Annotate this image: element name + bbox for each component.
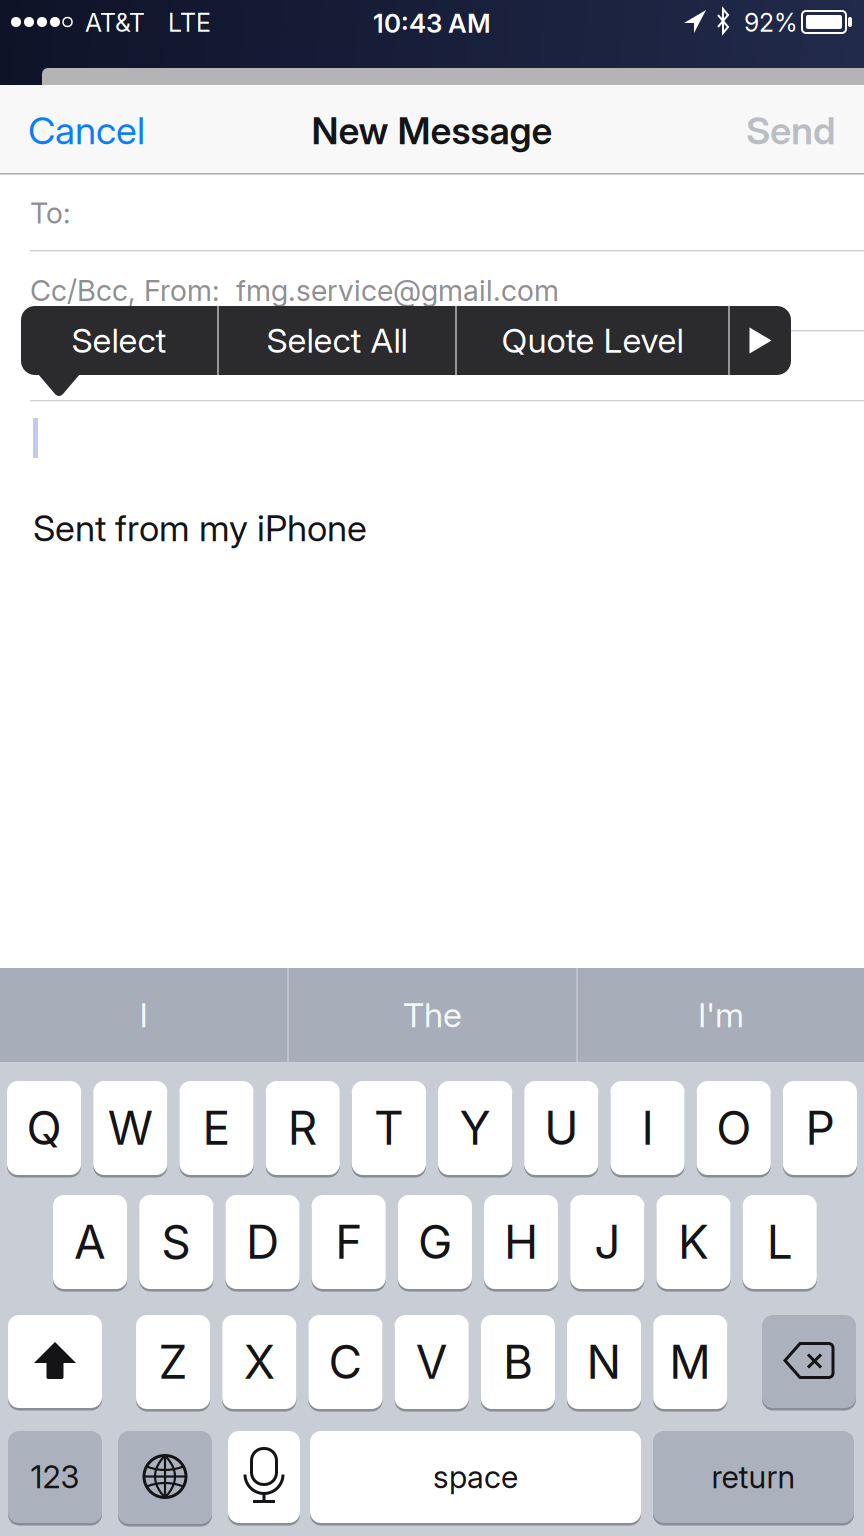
button[interactable]: R [266,1081,340,1177]
staticText: F [335,1215,362,1269]
button[interactable]: space [310,1431,641,1525]
button[interactable]: P [783,1081,857,1177]
staticText: return [711,1459,795,1495]
button[interactable]: T [352,1081,426,1177]
staticText: A [74,1215,106,1269]
staticText: Send [746,108,836,153]
button[interactable]: O [697,1081,771,1177]
button[interactable]: N [567,1315,641,1411]
staticText: D [246,1215,279,1269]
staticText: X [244,1335,275,1389]
staticText: I [139,995,147,1035]
button[interactable]: return [653,1431,854,1525]
button[interactable]: U [524,1081,598,1177]
button[interactable]: Send [746,108,836,153]
button[interactable]: F [312,1195,386,1291]
button[interactable]: Dictate [228,1431,300,1525]
staticText: J [594,1215,620,1269]
button[interactable]: B [481,1315,555,1411]
staticText: H [504,1215,538,1269]
staticText: Sent from my iPhone [33,507,367,549]
button[interactable]: L [743,1195,817,1291]
button[interactable]: Select All [219,306,455,375]
button[interactable]: C [308,1315,383,1411]
button[interactable]: V [395,1315,469,1411]
staticText: C [328,1335,362,1389]
staticText: space [433,1459,518,1495]
button[interactable]: I [0,968,287,1062]
button[interactable]: S [139,1195,213,1291]
button[interactable]: Quote Level [457,306,728,375]
button[interactable]: I'm [578,968,864,1062]
button[interactable]: Y [438,1081,512,1177]
button[interactable]: Z [136,1315,210,1411]
staticText: I'm [698,995,744,1035]
button[interactable]: To: [30,176,864,250]
staticText: LTE [168,8,211,37]
staticText: M [669,1335,711,1389]
staticText: The [403,995,462,1035]
button[interactable]: Next keyboard [118,1431,212,1526]
button[interactable]: 123 [8,1431,102,1525]
button[interactable]: K [656,1195,731,1291]
staticText: New Message [311,109,552,153]
staticText: Select [71,320,166,360]
button[interactable]: G [398,1195,472,1291]
staticText: 92% [744,8,798,37]
staticText: Select All [266,320,407,360]
staticText: Q [27,1101,62,1155]
staticText: E [202,1101,230,1155]
button[interactable]: W [93,1081,167,1177]
button[interactable]: Q [7,1081,81,1177]
staticText: I [641,1101,653,1155]
button[interactable]: More menu items [730,306,791,375]
button[interactable]: Shift [8,1315,102,1410]
staticText: B [503,1335,533,1389]
staticText: W [108,1101,153,1155]
staticText: R [288,1101,318,1155]
button[interactable]: I [610,1081,685,1177]
button[interactable]: Select [21,306,217,375]
button[interactable]: X [222,1315,296,1411]
button[interactable]: Cancel [28,108,145,153]
staticText: Cancel [28,108,145,153]
staticText: K [678,1215,709,1269]
staticText: 123 [30,1459,79,1495]
staticText: V [416,1335,448,1389]
staticText: Cc/Bcc, From: fmg.service@gmail.com [30,273,559,308]
staticText: U [544,1101,578,1155]
staticText: N [587,1335,622,1389]
button[interactable]: M [653,1315,727,1411]
staticText: Z [159,1335,188,1389]
button[interactable]: J [570,1195,644,1291]
staticText: Quote Level [501,320,683,360]
staticText: G [418,1215,452,1269]
button[interactable]: H [484,1195,558,1291]
staticText: P [805,1101,834,1155]
staticText: T [374,1101,404,1155]
staticText: L [767,1215,793,1269]
button[interactable]: Cc/Bcc, From: fmg.service@gmail.com [30,251,864,330]
button[interactable]: A [53,1195,127,1291]
staticText: To: [30,196,71,230]
staticText: AT&T [85,8,145,37]
button[interactable]: Delete [762,1315,856,1410]
staticText: S [161,1215,191,1269]
staticText: 10:43 AM [373,8,491,39]
button[interactable]: D [225,1195,300,1291]
button[interactable]: The [289,968,576,1062]
button[interactable]: E [179,1081,254,1177]
staticText: Y [460,1101,491,1155]
staticText: O [716,1101,751,1155]
